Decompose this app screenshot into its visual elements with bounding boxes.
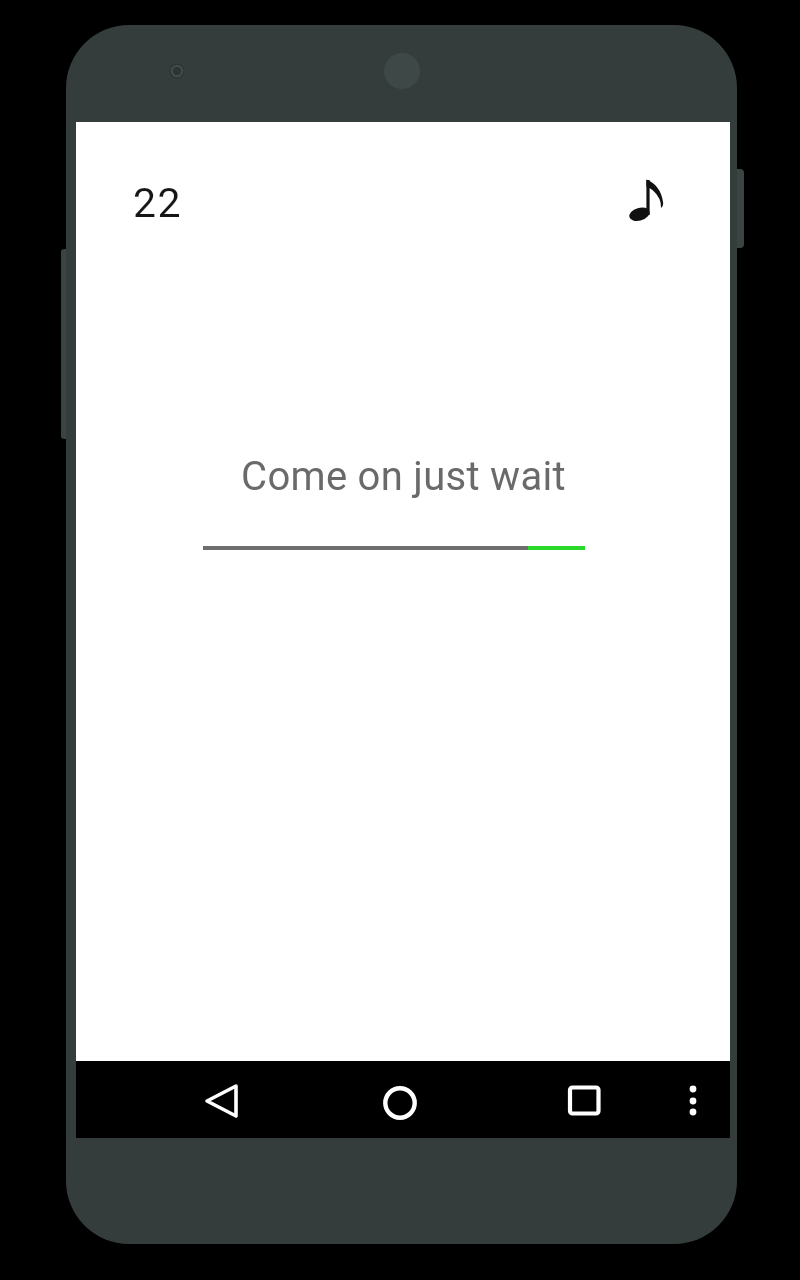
button[interactable] xyxy=(200,1081,244,1125)
button[interactable] xyxy=(562,1081,606,1125)
staticText: 22 xyxy=(133,179,183,227)
button[interactable] xyxy=(622,174,674,226)
button[interactable] xyxy=(676,1082,710,1126)
staticText: Come on just wait xyxy=(241,453,566,500)
button[interactable] xyxy=(378,1081,422,1125)
